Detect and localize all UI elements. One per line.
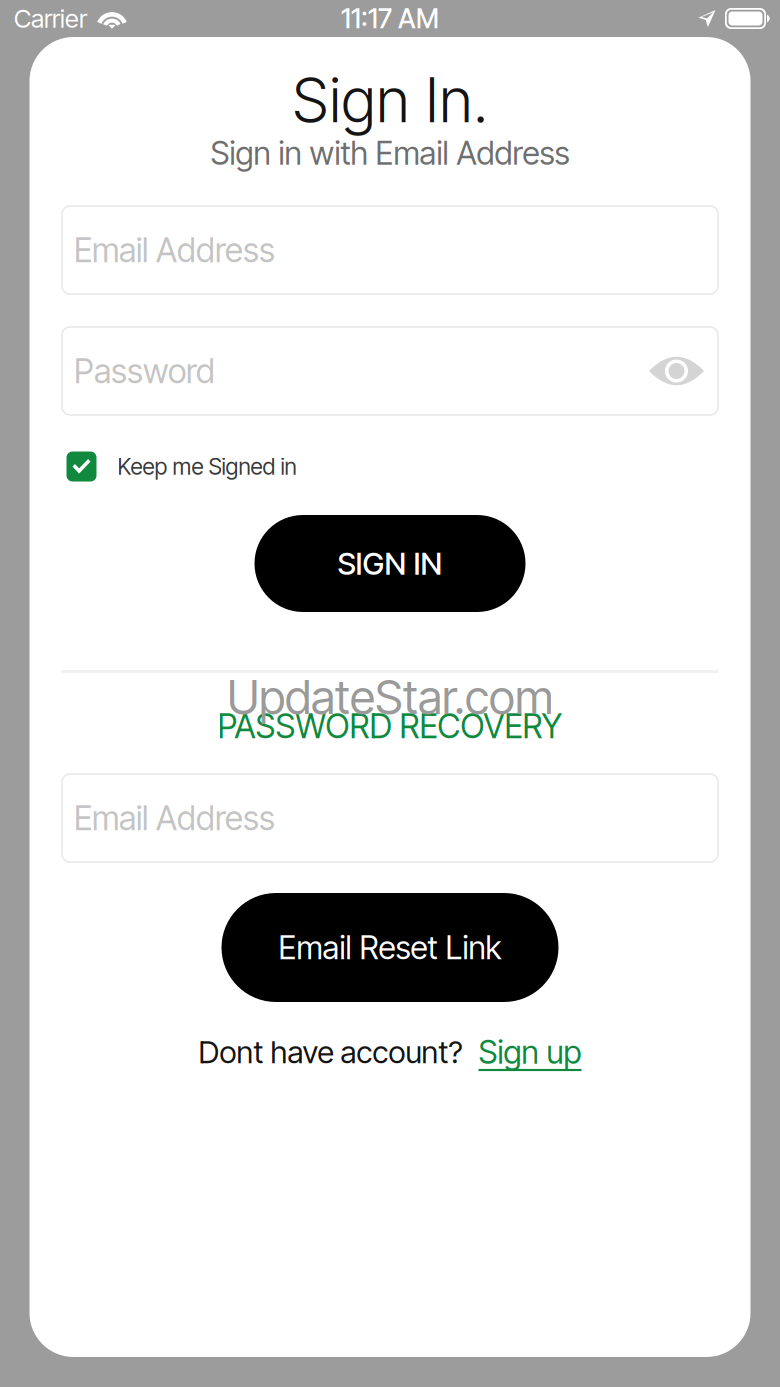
staticText: Sign in with Email Address bbox=[210, 134, 569, 172]
button[interactable]: Email Reset Link bbox=[221, 893, 558, 1002]
staticText: Password bbox=[74, 351, 215, 391]
button[interactable]: SIGN IN bbox=[254, 515, 525, 612]
button[interactable]: Sign up bbox=[478, 1033, 581, 1071]
staticText: Carrier bbox=[14, 3, 87, 34]
staticText: Sign In. bbox=[292, 63, 488, 137]
button[interactable]: Password bbox=[62, 327, 718, 415]
staticText: Dont have account? bbox=[198, 1033, 462, 1070]
staticText: Email Address bbox=[74, 230, 275, 270]
staticText: PASSWORD RECOVERY bbox=[217, 706, 562, 746]
staticText: 11:17 AM bbox=[341, 2, 439, 35]
staticText: Sign up bbox=[478, 1033, 581, 1071]
staticText: SIGN IN bbox=[337, 545, 442, 582]
staticText: Email Reset Link bbox=[278, 928, 501, 967]
button[interactable]: Email Address bbox=[62, 206, 718, 294]
button[interactable]: Keep me signed in bbox=[66, 451, 96, 481]
button[interactable]: Email Address bbox=[62, 774, 718, 862]
staticText: UpdateStar.com bbox=[227, 669, 553, 725]
staticText: Email Address bbox=[74, 798, 275, 838]
staticText: Keep me Signed in bbox=[117, 453, 296, 480]
